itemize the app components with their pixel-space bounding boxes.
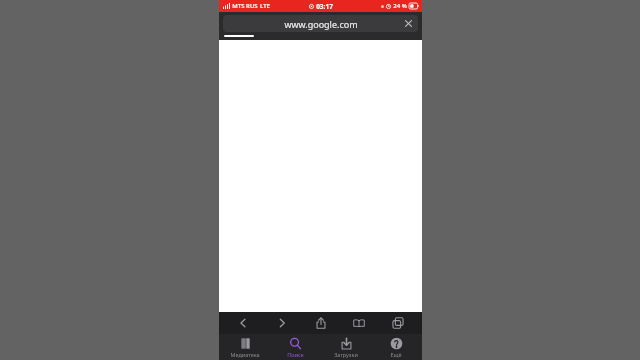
button[interactable]: Tabs [383,312,413,334]
button[interactable]: Forward [267,312,297,334]
button[interactable]: Поиск [270,334,320,360]
button[interactable]: Close [402,17,415,30]
staticText: Поиск [287,351,304,358]
button[interactable]: Bookmarks [344,312,374,334]
button[interactable]: Share [306,312,336,334]
staticText: www.google.com [284,18,358,30]
button[interactable]: Медиатека [220,334,270,360]
button[interactable]: Загрузки [321,334,371,360]
staticText: 03:17 [316,2,333,11]
button[interactable]: Back [228,312,258,334]
staticText: LTE [260,2,270,10]
button[interactable]: www.google.com [223,15,418,32]
staticText: Медиатека [230,351,260,358]
staticText: MTS RUS [232,2,258,10]
button[interactable]: Ещё [371,334,421,360]
staticText: Ещё [390,351,402,358]
staticText: 24 % [393,2,407,10]
staticText: Загрузки [334,351,358,358]
